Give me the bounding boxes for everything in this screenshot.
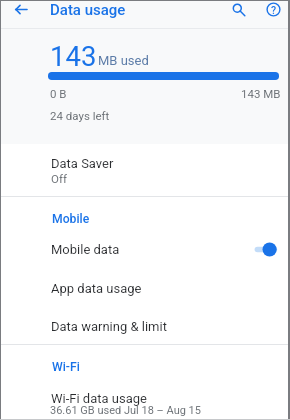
button[interactable]: App data usage	[0, 267, 290, 305]
staticText: 143 MB	[241, 87, 281, 100]
button[interactable]: Help	[260, 0, 287, 23]
staticText: 143	[50, 40, 97, 72]
button[interactable]: Data Saver	[0, 144, 290, 196]
button[interactable]: Search	[226, 0, 253, 25]
staticText: Data Saver	[51, 156, 114, 171]
button[interactable]: Data warning & limit	[0, 305, 290, 344]
staticText: Wi-Fi data usage	[51, 391, 147, 406]
staticText: MB used	[98, 53, 149, 68]
button[interactable]: Wi-Fi data usage	[0, 377, 290, 420]
staticText: 24 days left	[50, 109, 110, 122]
staticText: Wi-Fi	[52, 360, 80, 374]
staticText: App data usage	[51, 281, 142, 296]
staticText: Mobile	[52, 212, 90, 226]
staticText: Off	[51, 172, 67, 185]
staticText: Data usage	[50, 1, 126, 19]
staticText: Data warning & limit	[51, 319, 167, 334]
staticText: 36.61 GB used Jul 18 – Aug 15	[50, 404, 201, 417]
button[interactable]: Navigate up	[7, 0, 35, 23]
staticText: ?	[271, 4, 277, 16]
button[interactable]: Mobile data	[0, 229, 290, 267]
staticText: Mobile data	[51, 242, 120, 257]
staticText: 0 B	[50, 87, 67, 100]
